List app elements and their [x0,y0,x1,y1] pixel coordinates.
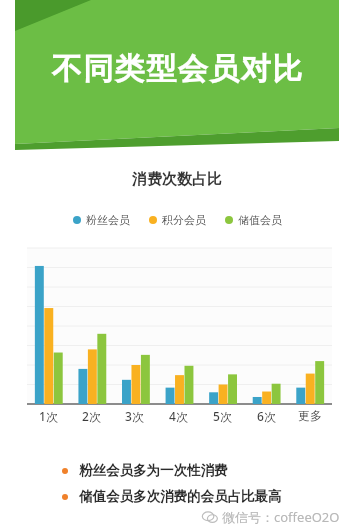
staticText: 1次 [39,408,58,424]
staticText: 储值会员多次消费的会员占比最高 [79,488,282,505]
staticText: 3次 [125,408,144,424]
staticText: 2次 [82,408,101,424]
button[interactable]: 粉丝会员多为一次性消费 [62,462,228,479]
staticText: 粉丝会员多为一次性消费 [79,462,228,479]
staticText: 储值会员 [238,213,282,227]
other: WeChat [202,509,218,525]
staticText: 更多 [298,408,322,423]
button[interactable]: 储值会员多次消费的会员占比最高 [62,488,282,505]
button[interactable]: 积分会员 [147,211,208,229]
button[interactable]: 粉丝会员 [71,211,132,229]
button[interactable]: 储值会员 [223,211,284,229]
staticText: 5次 [213,408,232,424]
staticText: 4次 [169,408,188,424]
staticText: 消费次数占比 [132,170,222,189]
staticText: 不同类型会员对比 [51,50,303,88]
staticText: 6次 [257,408,276,424]
staticText: 粉丝会员 [86,213,130,227]
staticText: 微信号：coffeeO2O [222,508,340,526]
staticText: 积分会员 [162,213,206,227]
